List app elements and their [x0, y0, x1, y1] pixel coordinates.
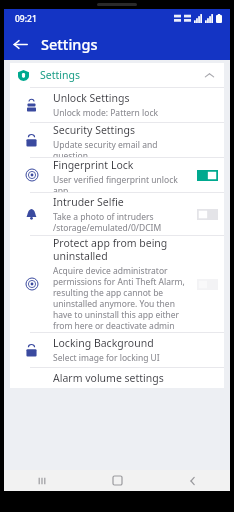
- staticText: Unlock mode: Pattern lock: [53, 107, 159, 119]
- staticText: Take a photo of intruders /storage/emula…: [53, 211, 162, 233]
- button[interactable]: Home: [80, 470, 155, 491]
- staticText: Acquire device administrator permissions…: [53, 265, 186, 332]
- staticText: Locking Background: [53, 336, 154, 350]
- button[interactable]: Locking Background: [10, 333, 224, 367]
- staticText: Protect app from being uninstalled: [53, 236, 186, 263]
- staticText: Settings: [41, 34, 98, 54]
- button[interactable]: Recents: [4, 470, 80, 491]
- staticText: Update security email and question: [53, 139, 186, 157]
- button[interactable]: Back: [155, 470, 230, 491]
- button[interactable]: Unlock Settings: [10, 88, 224, 122]
- staticText: Alarm volume settings: [53, 371, 164, 385]
- button[interactable]: Toggle on: [197, 170, 218, 181]
- button[interactable]: Back: [4, 28, 36, 60]
- staticText: Security Settings: [53, 123, 136, 137]
- staticText: Intruder Selfie: [53, 195, 124, 209]
- button[interactable]: Settings: [10, 63, 224, 87]
- staticText: 09:21: [15, 13, 37, 25]
- button[interactable]: Fingerprint Lock: [10, 158, 224, 192]
- button[interactable]: Intruder Selfie: [10, 193, 224, 235]
- button[interactable]: Security Settings: [10, 123, 224, 157]
- staticText: User verified fingerprint unlock app: [53, 174, 186, 192]
- button[interactable]: Protect app from being uninstalled: [10, 236, 224, 332]
- staticText: Unlock Settings: [53, 91, 130, 105]
- staticText: Fingerprint Lock: [53, 158, 134, 172]
- button[interactable]: Toggle off: [197, 209, 218, 220]
- staticText: Select image for locking UI: [53, 352, 160, 364]
- staticText: Settings: [40, 68, 80, 82]
